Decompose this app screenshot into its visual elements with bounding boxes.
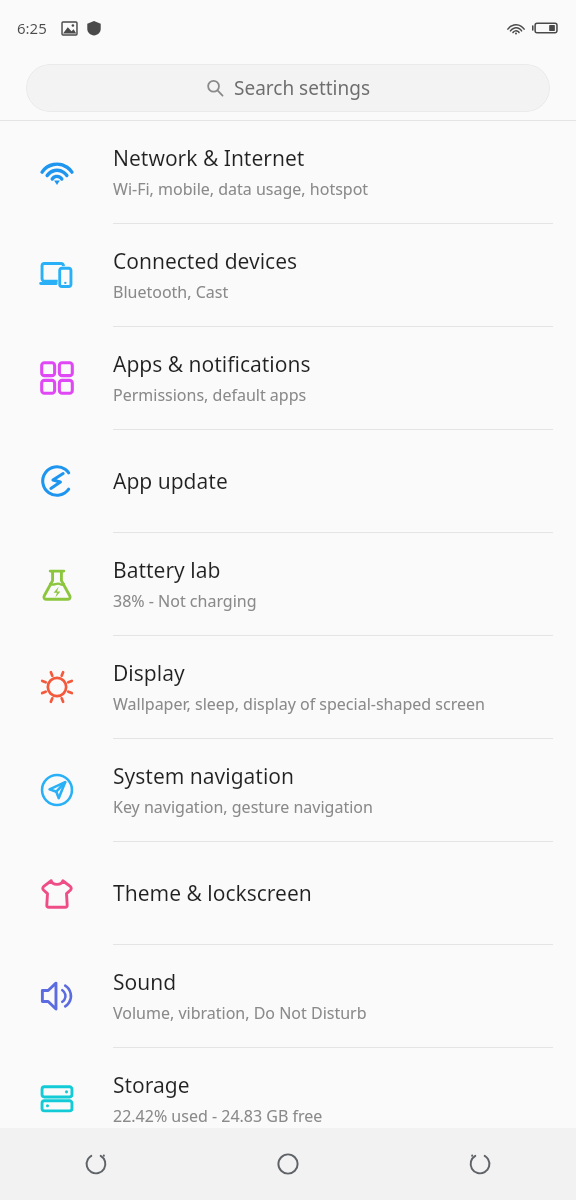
staticText: Theme & lockscreen: [113, 879, 312, 908]
staticText: Wallpaper, sleep, display of special-sha…: [113, 693, 485, 715]
button[interactable]: System navigation: [0, 739, 576, 841]
button[interactable]: Recents: [0, 1128, 192, 1200]
staticText: 22.42% used - 24.83 GB free: [113, 1105, 323, 1127]
staticText: Apps & notifications: [113, 350, 311, 379]
button[interactable]: Sound: [0, 945, 576, 1047]
staticText: Battery lab: [113, 556, 221, 585]
button[interactable]: Theme & lockscreen: [0, 842, 576, 944]
staticText: Network & Internet: [113, 144, 305, 173]
button[interactable]: Display: [0, 636, 576, 738]
button[interactable]: Home: [192, 1128, 384, 1200]
staticText: Bluetooth, Cast: [113, 281, 229, 303]
button[interactable]: App update: [0, 430, 576, 532]
button[interactable]: Search settings: [26, 64, 550, 112]
button[interactable]: Storage: [0, 1048, 576, 1150]
button[interactable]: Connected devices: [0, 224, 576, 326]
button[interactable]: Network & Internet: [0, 121, 576, 223]
staticText: Volume, vibration, Do Not Disturb: [113, 1002, 367, 1024]
staticText: Wi-Fi, mobile, data usage, hotspot: [113, 178, 369, 200]
staticText: App update: [113, 467, 228, 496]
staticText: 38% - Not charging: [113, 590, 257, 612]
staticText: Search settings: [234, 75, 371, 101]
staticText: 6:25: [17, 18, 47, 38]
staticText: Display: [113, 659, 185, 688]
staticText: Permissions, default apps: [113, 384, 307, 406]
staticText: System navigation: [113, 762, 295, 791]
staticText: Connected devices: [113, 247, 298, 276]
button[interactable]: Battery lab: [0, 533, 576, 635]
button[interactable]: Apps & notifications: [0, 327, 576, 429]
staticText: Key navigation, gesture navigation: [113, 796, 373, 818]
button[interactable]: Back: [384, 1128, 576, 1200]
staticText: Sound: [113, 968, 177, 997]
staticText: Storage: [113, 1071, 190, 1100]
